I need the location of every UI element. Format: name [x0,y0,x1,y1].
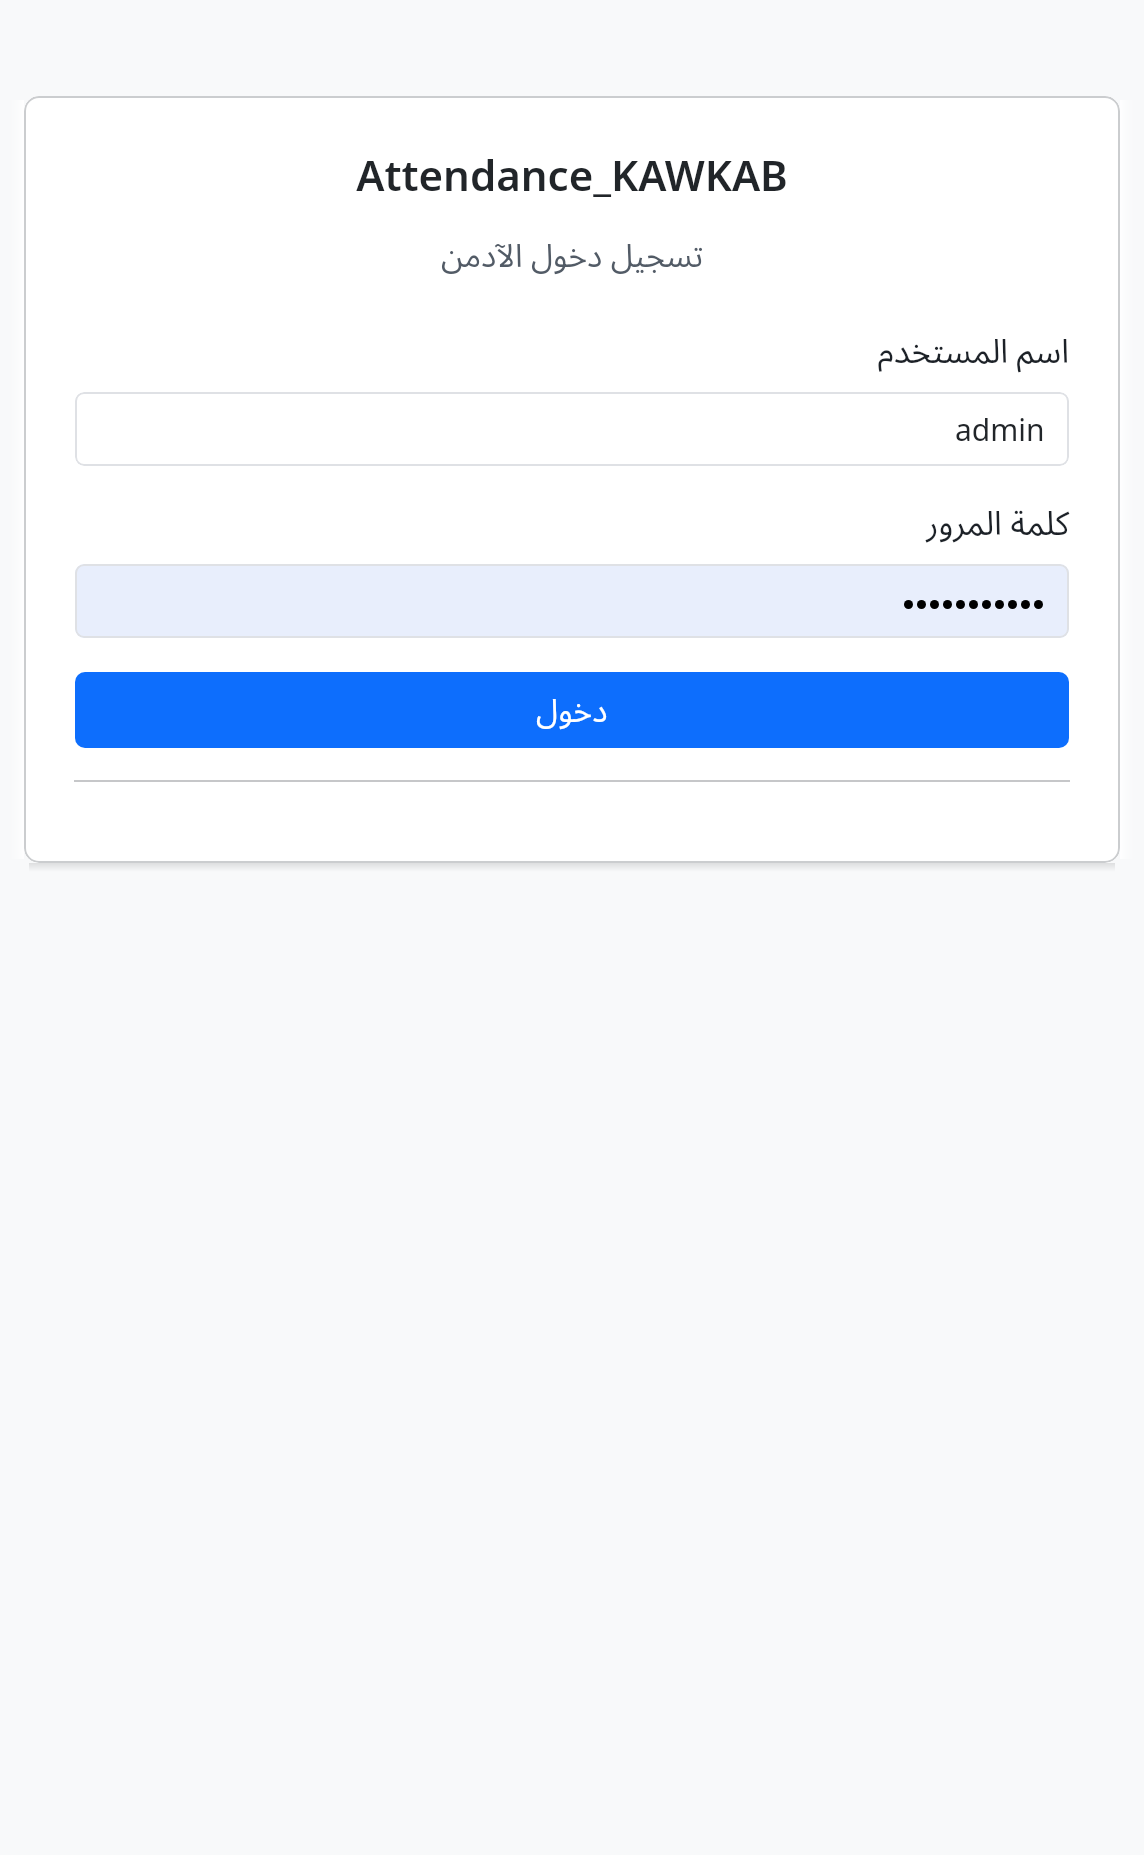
staticText: اسم المستخدم [75,328,1069,373]
staticText: تسجيل دخول الآدمن [24,233,1120,277]
staticText: Attendance_KAWKAB [24,146,1120,203]
button[interactable]: دخول [75,672,1069,748]
staticText: كلمة المرور [75,500,1069,545]
staticText: admin [955,409,1045,450]
button[interactable]: اسم المستخدم [75,392,1069,466]
button[interactable]: كلمة المرور [75,564,1069,638]
staticText: دخول [536,688,608,732]
